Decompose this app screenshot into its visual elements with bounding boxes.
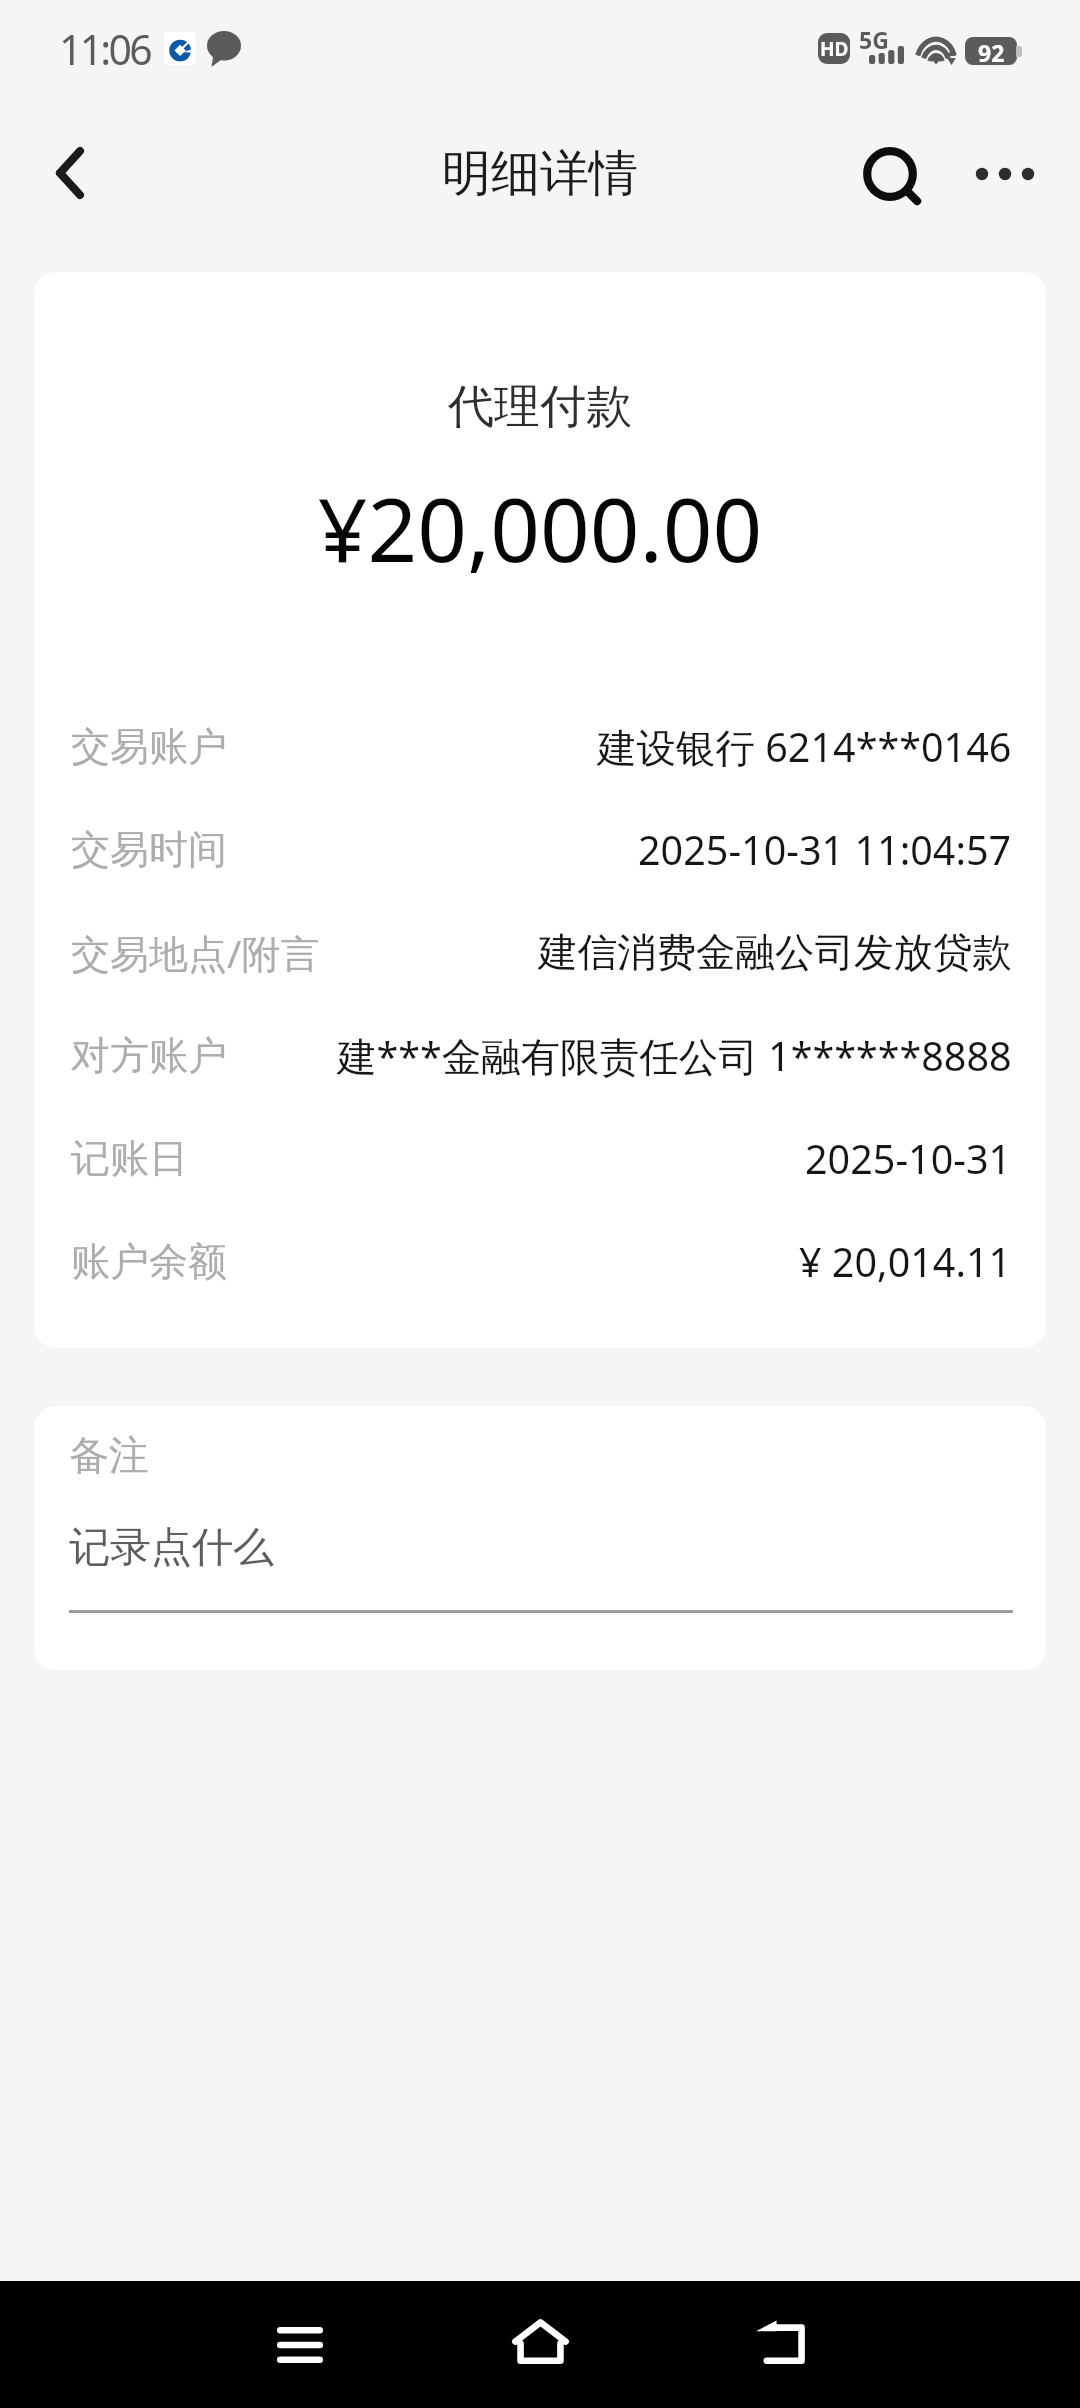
staticText: ¥ 20,014.11 (799, 1235, 1012, 1289)
staticText: 对方账户 (71, 1031, 227, 1080)
staticText: 明细详情 (0, 143, 1080, 205)
staticText: 5G (859, 24, 889, 55)
staticText: HD (820, 36, 849, 62)
staticText: 2025-10-31 (805, 1132, 1012, 1186)
staticText: 交易地点/附言 (71, 926, 320, 979)
staticText: 建信消费金融公司发放贷款 (538, 928, 1012, 978)
button[interactable]: Search (840, 124, 940, 224)
staticText: 代理付款 (34, 378, 1046, 436)
staticText: 2025-10-31 11:04:57 (638, 823, 1012, 877)
staticText: ¥20,000.00 (34, 469, 1046, 587)
staticText: 账户余额 (71, 1237, 227, 1286)
staticText: 92 (978, 37, 1005, 65)
staticText: 建设银行 6214***0146 (597, 720, 1012, 774)
button[interactable]: Back (20, 123, 120, 223)
button[interactable]: Home (480, 2281, 600, 2401)
button[interactable]: Recent apps (240, 2285, 360, 2405)
staticText: 记录点什么 (69, 1522, 274, 1574)
staticText: 交易账户 (71, 722, 227, 771)
button[interactable]: 记录点什么 (69, 1502, 1013, 1611)
staticText: 备注 (69, 1430, 149, 1480)
staticText: 11:06 (59, 21, 150, 77)
staticText: 建***金融有限责任公司 1******8888 (337, 1029, 1012, 1083)
button[interactable]: More options (955, 124, 1055, 224)
staticText: 交易时间 (71, 825, 227, 874)
staticText: 记账日 (71, 1134, 188, 1183)
button[interactable]: Back (720, 2282, 840, 2402)
